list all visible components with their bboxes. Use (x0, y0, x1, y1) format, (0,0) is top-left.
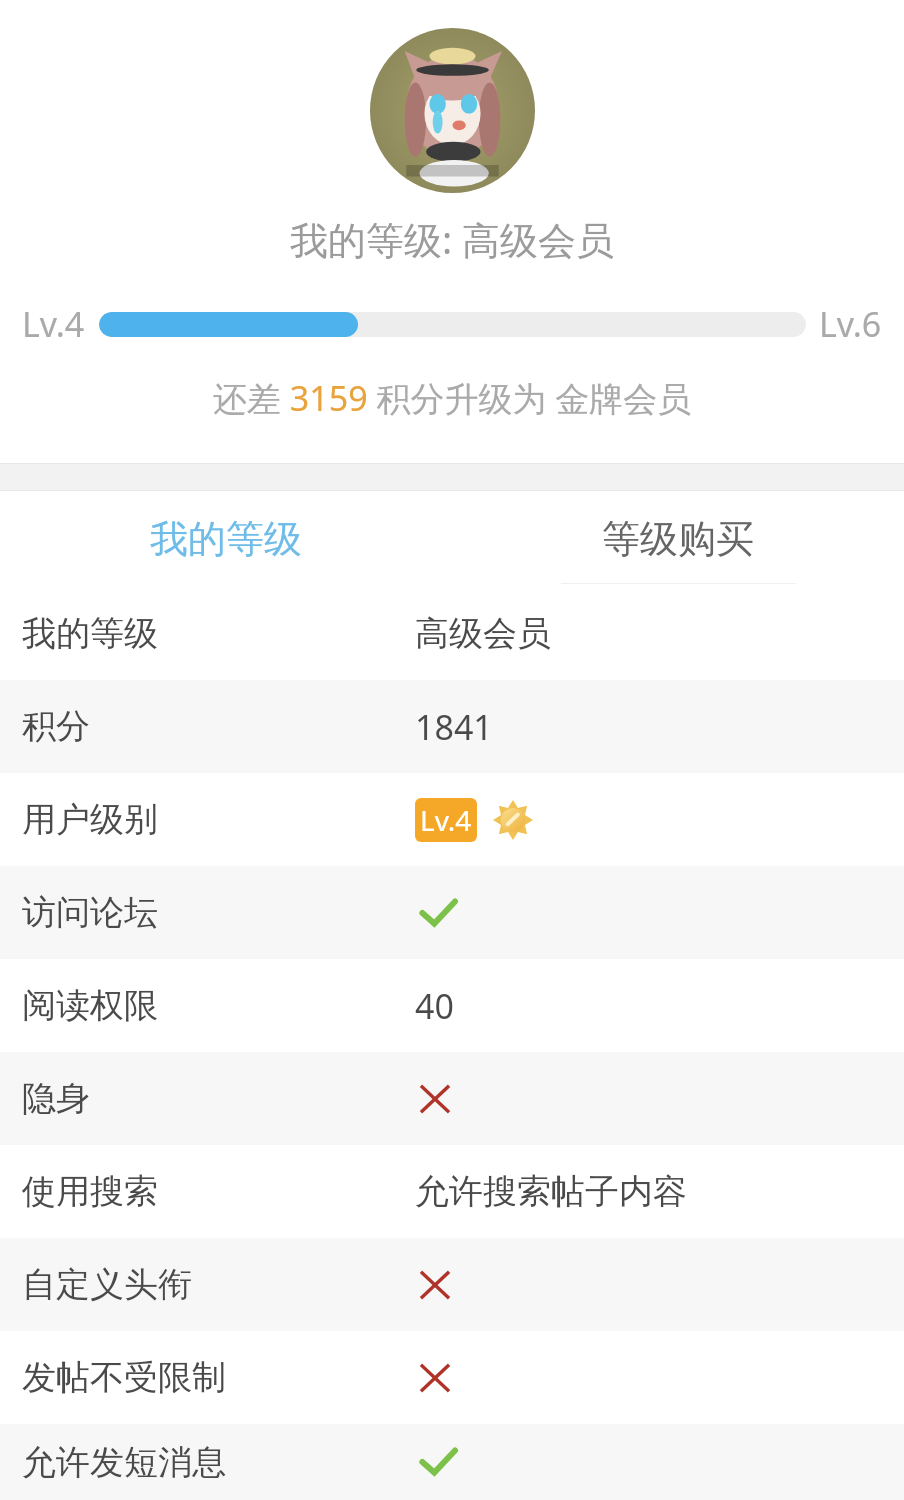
button[interactable]: Yes (415, 890, 461, 936)
button[interactable]: 隐身 (0, 1052, 904, 1145)
staticText: 等级购买 (602, 515, 754, 563)
staticText: 我的等级 (150, 515, 302, 563)
staticText: 允许发短消息 (22, 1441, 226, 1484)
staticText: 访问论坛 (22, 891, 158, 934)
button[interactable]: 我的等级 (0, 491, 452, 587)
button[interactable]: 用户级别 (0, 773, 904, 866)
button[interactable]: 访问论坛 (0, 866, 904, 959)
staticText: 隐身 (22, 1077, 90, 1120)
button[interactable]: 使用搜索 (0, 1145, 904, 1238)
staticText: 用户级别 (22, 798, 158, 841)
staticText: 还差 3159 积分升级为 金牌会员 (213, 375, 692, 421)
staticText: 自定义头衔 (22, 1263, 192, 1306)
staticText: 使用搜索 (22, 1170, 158, 1213)
button[interactable]: No (415, 1358, 455, 1398)
staticText: 我的等级: 高级会员 (290, 213, 615, 265)
button[interactable]: No (415, 1265, 455, 1305)
staticText: 我的等级 (22, 612, 158, 655)
staticText: 1841 (415, 704, 493, 750)
button[interactable]: Yes (415, 1439, 461, 1485)
button[interactable]: 发帖不受限制 (0, 1331, 904, 1424)
button[interactable]: Avatar (370, 28, 535, 193)
staticText: 阅读权限 (22, 984, 158, 1027)
staticText: Lv.6 (819, 301, 882, 347)
staticText: 允许搜索帖子内容 (415, 1170, 687, 1213)
button[interactable]: 积分 (0, 680, 904, 773)
staticText: 积分 (22, 705, 90, 748)
staticText: Lv.4 (420, 801, 472, 839)
button[interactable]: 我的等级 (0, 587, 904, 680)
button[interactable]: Level star (493, 800, 533, 840)
staticText: 发帖不受限制 (22, 1356, 226, 1399)
staticText: Lv.4 (22, 301, 85, 347)
staticText: 40 (415, 983, 454, 1029)
button[interactable]: 等级购买 (452, 491, 904, 587)
button[interactable]: No (415, 1079, 455, 1119)
button[interactable]: 阅读权限 (0, 959, 904, 1052)
staticText: 高级会员 (415, 612, 551, 655)
button[interactable]: 自定义头衔 (0, 1238, 904, 1331)
button[interactable]: 允许发短消息 (0, 1424, 904, 1500)
